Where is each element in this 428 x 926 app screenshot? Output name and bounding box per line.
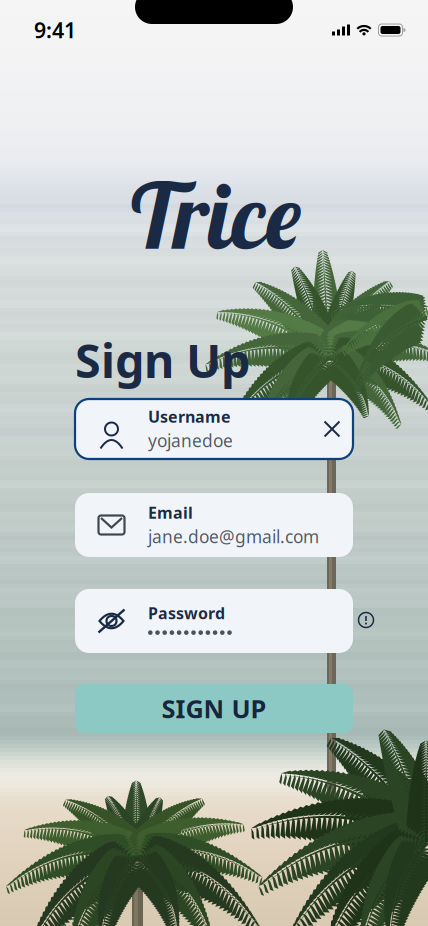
staticText: 9:41: [34, 16, 76, 44]
staticText: Sign Up: [75, 329, 250, 391]
staticText: SIGN UP: [161, 692, 266, 725]
staticText: Password: [148, 602, 225, 624]
button[interactable]: Password: [75, 589, 353, 653]
button[interactable]: Email: [75, 493, 353, 557]
staticText: Email: [148, 502, 193, 523]
staticText: Username: [148, 406, 231, 427]
staticText: jane.doe@gmail.com: [148, 525, 319, 548]
staticText: Trice: [126, 158, 302, 271]
button[interactable]: SIGN UP: [75, 684, 353, 733]
staticText: yojanedoe: [148, 429, 233, 452]
button[interactable]: Username: [75, 399, 353, 459]
